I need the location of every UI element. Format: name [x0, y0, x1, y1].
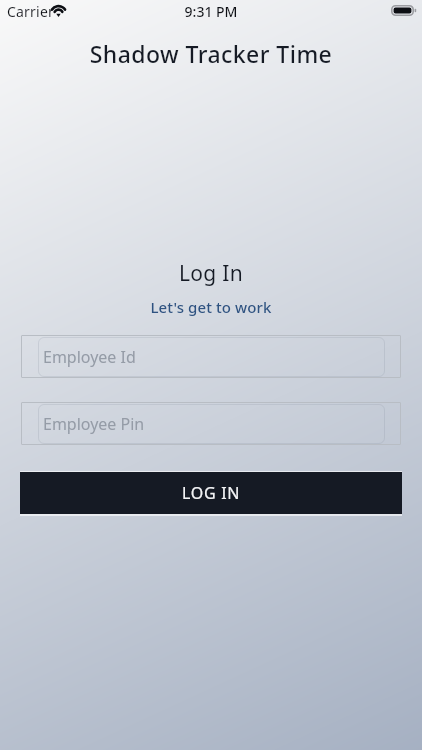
staticText: 9:31 PM [0, 2, 422, 21]
staticText: Log In [0, 259, 422, 288]
staticText: Employee Pin [43, 413, 145, 435]
staticText: Employee Id [43, 346, 136, 368]
staticText: LOG IN [182, 482, 241, 504]
button[interactable]: LOG IN [20, 472, 402, 514]
button[interactable]: Employee Pin [21, 402, 401, 445]
staticText: Carrier [7, 2, 54, 21]
button[interactable]: Employee Id [21, 335, 401, 378]
staticText: Shadow Tracker Time [0, 38, 422, 69]
staticText: Let's get to work [0, 297, 422, 317]
